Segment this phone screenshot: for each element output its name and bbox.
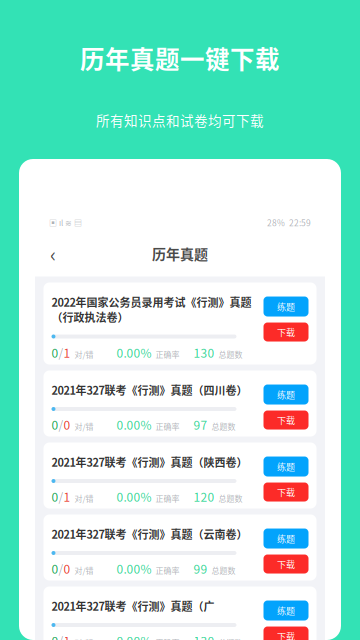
button[interactable]: 练题 bbox=[263, 600, 308, 620]
staticText: 正确率 bbox=[151, 564, 179, 576]
staticText: 练题 bbox=[277, 460, 295, 473]
staticText: 97 bbox=[193, 416, 207, 433]
staticText: 对/错 bbox=[70, 420, 93, 432]
staticText: 2021年327联考《行测》真题（四川卷） bbox=[51, 382, 247, 398]
staticText: 0 bbox=[51, 632, 58, 640]
staticText: 下载 bbox=[277, 413, 295, 426]
staticText: 总题数 bbox=[214, 492, 242, 504]
staticText: 下载 bbox=[277, 629, 295, 640]
staticText: 下载 bbox=[277, 557, 295, 570]
staticText: 正确率 bbox=[151, 492, 179, 504]
staticText: 2021年327联考《行测》真题（陕西卷） bbox=[51, 454, 247, 470]
staticText: 0.00% bbox=[116, 560, 151, 577]
staticText: ▣ ıl ≋ ▤ bbox=[49, 217, 82, 228]
staticText: ‹ bbox=[50, 239, 56, 268]
staticText: 2021年327联考《行测》真题（云南卷） bbox=[51, 526, 247, 542]
staticText: 1 bbox=[63, 632, 70, 640]
staticText: 总题数 bbox=[207, 420, 235, 432]
staticText: 练题 bbox=[277, 388, 295, 401]
staticText: 练题 bbox=[277, 604, 295, 617]
staticText: / bbox=[58, 416, 63, 433]
staticText: 对/错 bbox=[70, 348, 93, 360]
staticText: 1 bbox=[63, 488, 70, 505]
staticText: 正确率 bbox=[151, 636, 179, 640]
staticText: 2022年国家公务员录用考试《行测》真题 bbox=[51, 294, 251, 310]
staticText: 总题数 bbox=[207, 564, 235, 576]
staticText: 0.00% bbox=[116, 416, 151, 433]
staticText: 正确率 bbox=[151, 348, 179, 360]
staticText: 0 bbox=[63, 416, 70, 433]
staticText: 99 bbox=[193, 560, 207, 577]
staticText: 对/错 bbox=[70, 564, 93, 576]
staticText: 130 bbox=[193, 344, 214, 361]
staticText: 0.00% bbox=[116, 344, 151, 361]
staticText: 130 bbox=[193, 632, 214, 640]
button[interactable]: 下载 bbox=[263, 322, 308, 341]
staticText: 对/错 bbox=[70, 636, 93, 640]
staticText: / bbox=[58, 560, 63, 577]
button[interactable]: 下载 bbox=[263, 626, 308, 640]
staticText: 练题 bbox=[277, 300, 295, 313]
staticText: 0 bbox=[63, 560, 70, 577]
staticText: （行政执法卷） bbox=[51, 309, 128, 325]
staticText: 对/错 bbox=[70, 492, 93, 504]
staticText: 正确率 bbox=[151, 420, 179, 432]
staticText: 历年真题一键下载 bbox=[80, 40, 280, 76]
staticText: 历年真题 bbox=[152, 243, 208, 264]
button[interactable]: 练题 bbox=[263, 528, 308, 548]
staticText: 总题数 bbox=[214, 348, 242, 360]
staticText: 下载 bbox=[277, 325, 295, 338]
staticText: 练题 bbox=[277, 532, 295, 545]
staticText: 28% 22:59 bbox=[267, 216, 311, 229]
button[interactable]: Back bbox=[41, 241, 65, 265]
staticText: 1 bbox=[63, 344, 70, 361]
staticText: 0 bbox=[51, 344, 58, 361]
button[interactable]: 练题 bbox=[263, 456, 308, 476]
staticText: / bbox=[58, 632, 63, 640]
button[interactable]: 下载 bbox=[263, 410, 308, 429]
staticText: 所有知识点和试卷均可下载 bbox=[96, 110, 264, 130]
button[interactable]: 下载 bbox=[263, 554, 308, 573]
staticText: 0 bbox=[51, 488, 58, 505]
staticText: 0.00% bbox=[116, 488, 151, 505]
staticText: 0.00% bbox=[116, 632, 151, 640]
staticText: 下载 bbox=[277, 485, 295, 498]
button[interactable]: 练题 bbox=[263, 384, 308, 404]
staticText: 总题数 bbox=[214, 636, 242, 640]
staticText: / bbox=[58, 488, 63, 505]
staticText: / bbox=[58, 344, 63, 361]
staticText: 120 bbox=[193, 488, 214, 505]
staticText: 0 bbox=[51, 560, 58, 577]
button[interactable]: 练题 bbox=[263, 296, 308, 316]
staticText: 2021年327联考《行测》真题（广 bbox=[51, 598, 214, 614]
staticText: 0 bbox=[51, 416, 58, 433]
button[interactable]: 下载 bbox=[263, 482, 308, 501]
